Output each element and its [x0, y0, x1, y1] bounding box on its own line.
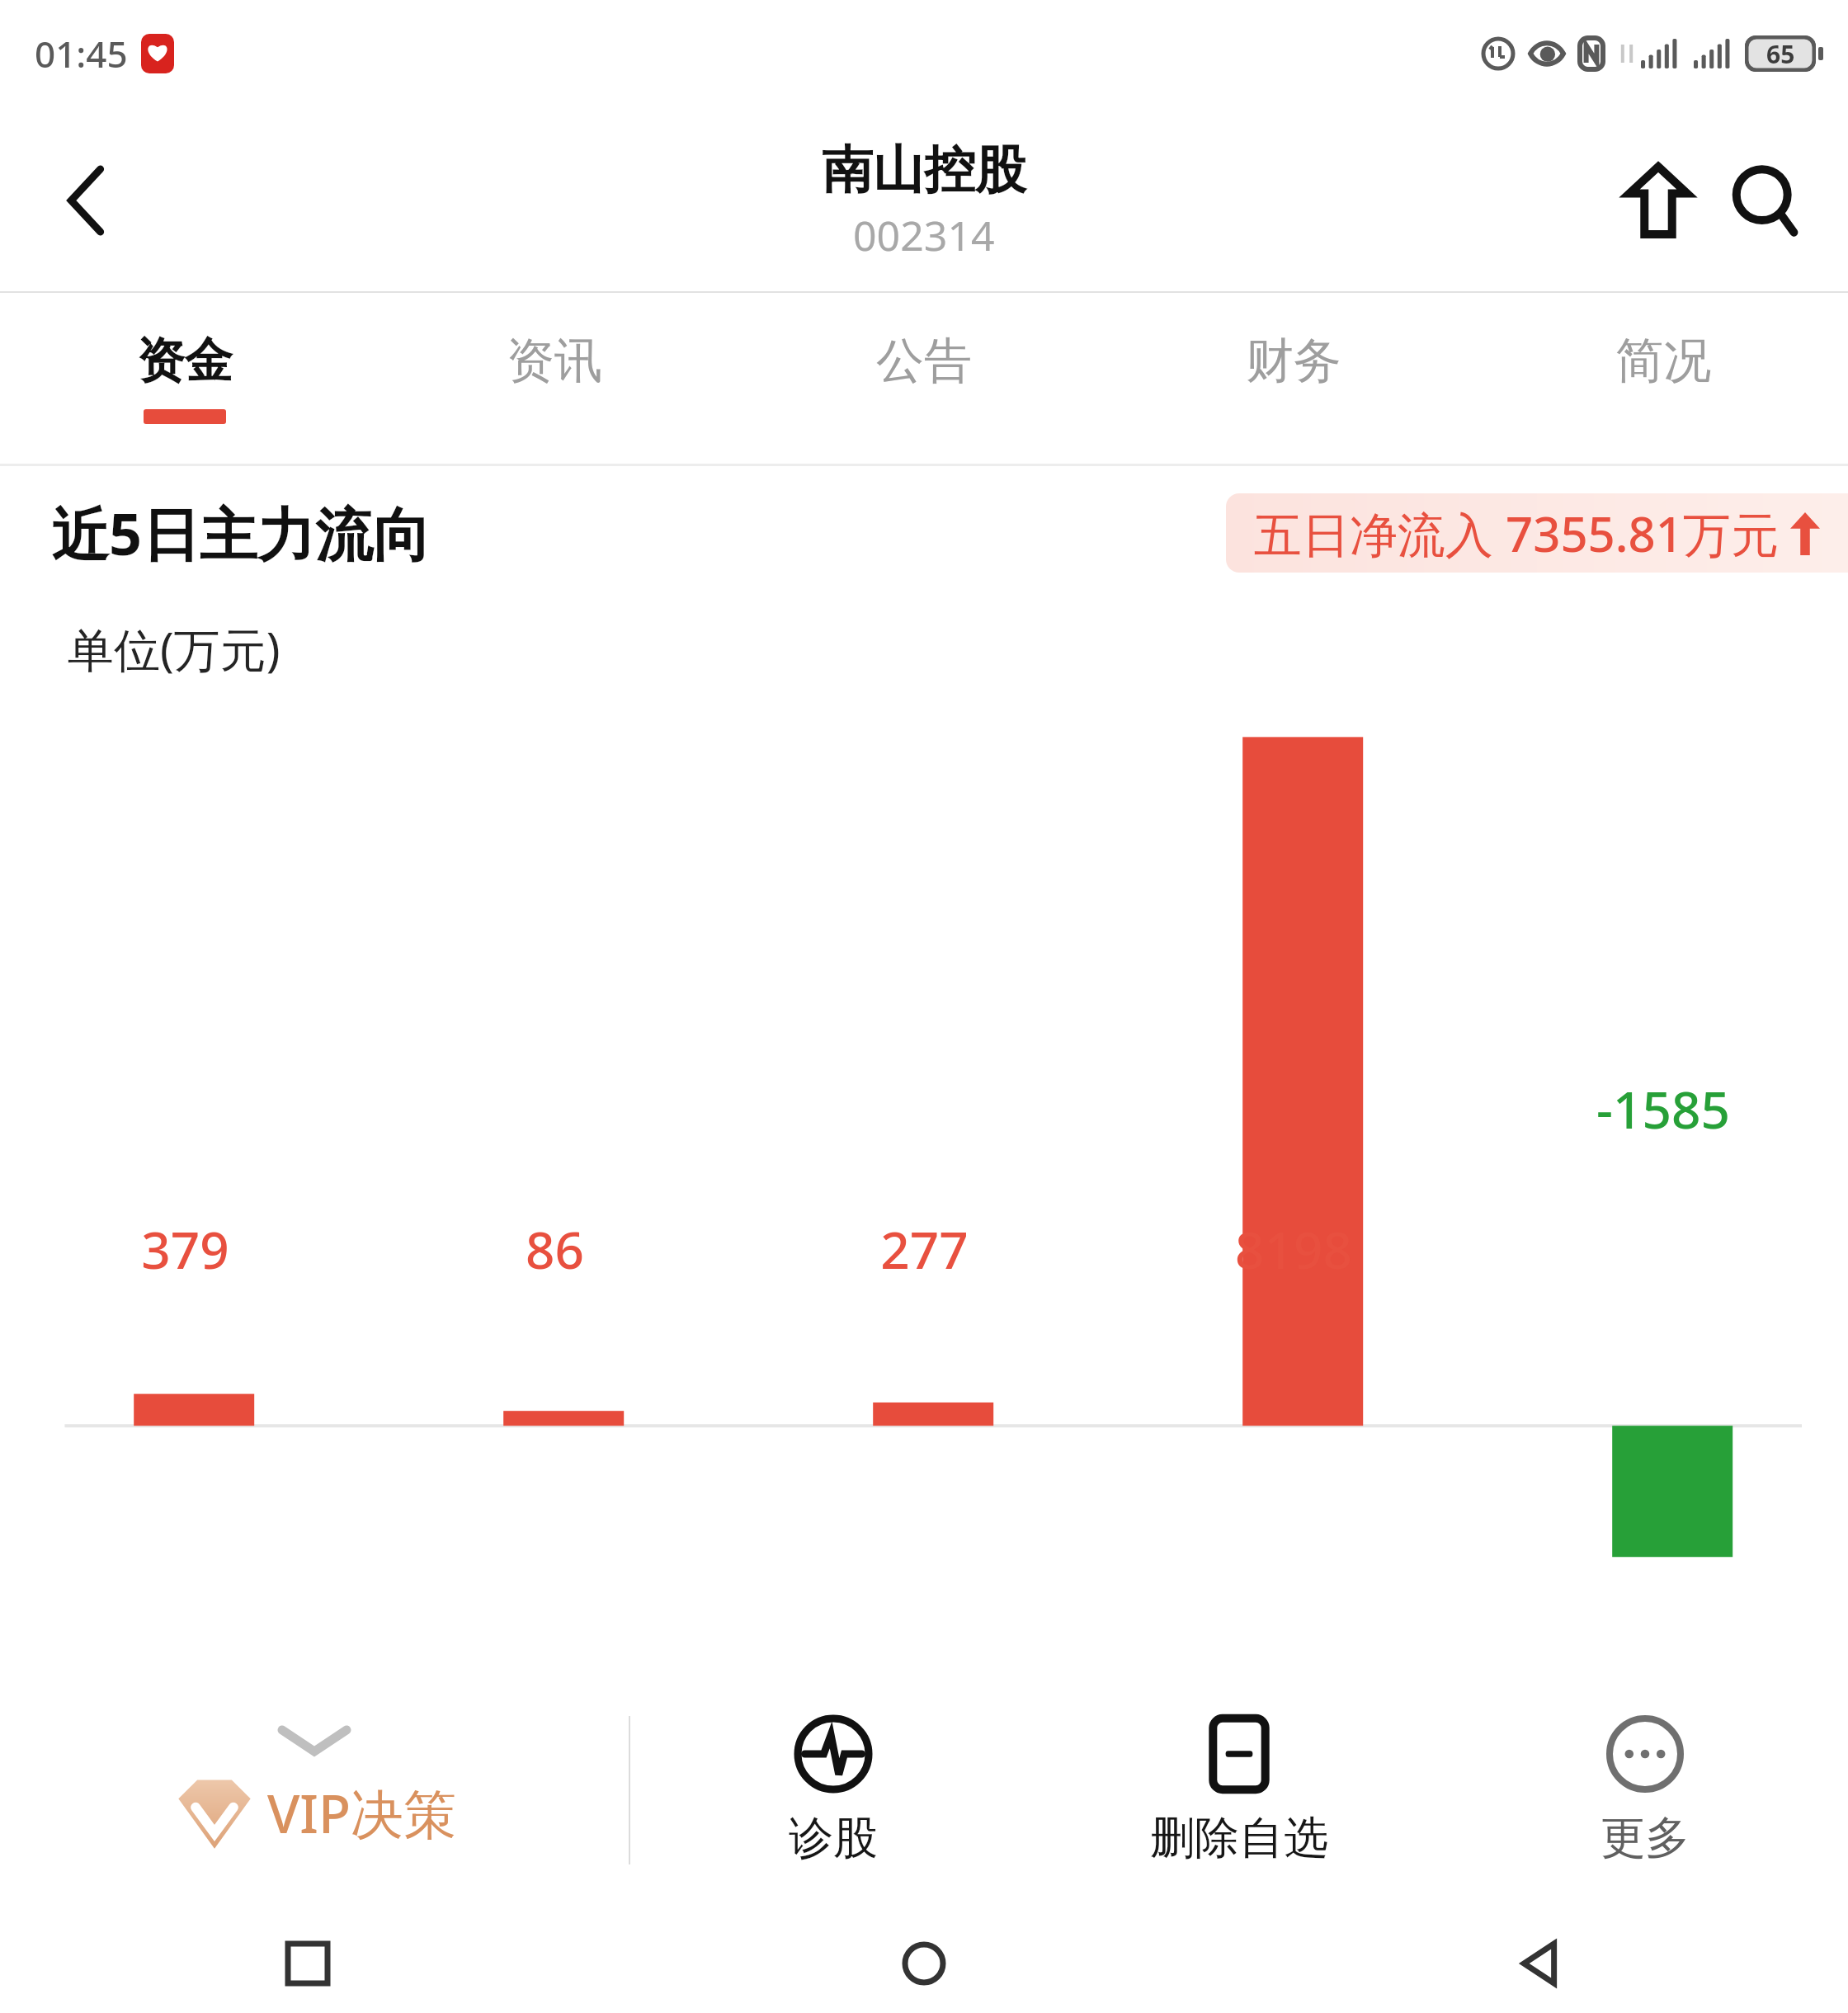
staticText: 277: [880, 1214, 969, 1284]
staticText: -1585: [1596, 1074, 1730, 1143]
staticText: 002314: [853, 207, 995, 263]
staticText: 资讯: [507, 331, 602, 391]
staticText: VIP决策: [267, 1777, 457, 1849]
button[interactable]: 诊股: [630, 1666, 1036, 1914]
button[interactable]: Recents: [0, 1914, 615, 2013]
staticText: 五日净流入 7355.81万元: [1254, 501, 1779, 566]
button[interactable]: 更多: [1442, 1666, 1848, 1914]
staticText: 财务: [1246, 331, 1341, 391]
staticText: 01:45: [35, 29, 128, 78]
staticText: 更多: [1600, 1810, 1690, 1866]
staticText: 诊股: [789, 1810, 878, 1866]
button[interactable]: 资讯: [370, 293, 739, 466]
button[interactable]: Back: [1232, 1914, 1848, 2013]
button[interactable]: VIP决策: [0, 1666, 629, 1914]
button[interactable]: 财务: [1109, 293, 1478, 466]
staticText: 单位(万元): [68, 617, 280, 680]
button[interactable]: 五日净流入 7355.81万元: [1254, 493, 1820, 573]
button[interactable]: 公告: [739, 293, 1109, 466]
staticText: 86: [526, 1214, 584, 1284]
button[interactable]: Share: [1609, 151, 1708, 250]
staticText: 8198: [1235, 1214, 1352, 1284]
button[interactable]: 简况: [1478, 293, 1848, 466]
button[interactable]: Back: [41, 155, 132, 246]
staticText: 65: [1766, 37, 1795, 71]
staticText: 公告: [876, 331, 972, 391]
staticText: 删除自选: [1150, 1810, 1328, 1866]
button[interactable]: Search: [1716, 151, 1815, 250]
button[interactable]: Home: [615, 1914, 1232, 2013]
staticText: 资金: [137, 331, 233, 391]
button[interactable]: 删除自选: [1036, 1666, 1442, 1914]
staticText: 379: [141, 1214, 229, 1284]
staticText: 南山控股: [822, 138, 1026, 202]
button[interactable]: 资金: [0, 293, 370, 466]
staticText: 近5日主力流向: [51, 493, 431, 573]
staticText: 简况: [1615, 331, 1711, 391]
